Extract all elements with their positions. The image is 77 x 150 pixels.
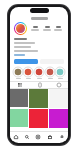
button[interactable]: Create bbox=[32, 132, 44, 141]
button[interactable]: Reels bbox=[30, 82, 49, 88]
button[interactable]: Highlight bbox=[34, 67, 44, 79]
button[interactable]: Home bbox=[10, 132, 21, 141]
button[interactable]: Highlight bbox=[45, 67, 55, 79]
button[interactable] bbox=[30, 26, 40, 31]
button[interactable]: Tagged bbox=[49, 82, 68, 88]
button[interactable]: Search bbox=[21, 132, 32, 141]
button[interactable]: Highlight bbox=[13, 67, 23, 79]
button[interactable]: Username bbox=[10, 15, 68, 22]
button[interactable]: Profile photo bbox=[14, 22, 27, 35]
button[interactable] bbox=[53, 26, 63, 31]
button[interactable]: Grid bbox=[10, 82, 30, 88]
button[interactable]: Highlight bbox=[55, 67, 65, 79]
button[interactable]: Highlight bbox=[23, 67, 33, 79]
button[interactable] bbox=[42, 26, 52, 31]
button[interactable]: Follow bbox=[14, 59, 38, 64]
button[interactable]: Profile bbox=[56, 132, 68, 141]
button[interactable]: Shop bbox=[44, 132, 56, 141]
